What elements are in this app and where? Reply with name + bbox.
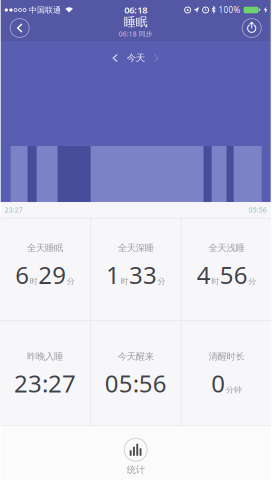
staticText: 0: [211, 367, 225, 399]
staticText: 29: [38, 259, 66, 290]
staticText: 清醒时长: [208, 351, 244, 362]
staticText: 时: [211, 276, 219, 286]
staticText: 今天醒来: [118, 351, 154, 362]
staticText: 6: [15, 259, 29, 290]
staticText: 时: [30, 276, 38, 286]
staticText: 1: [106, 259, 120, 290]
staticText: 分钟: [226, 385, 242, 395]
staticText: 昨晚入睡: [27, 351, 63, 362]
staticText: 睡眠: [124, 15, 148, 29]
staticText: 23:27: [14, 367, 76, 399]
button[interactable]: 统计: [106, 433, 166, 480]
staticText: 33: [129, 259, 157, 290]
staticText: 06:18: [124, 4, 147, 16]
staticText: 全天浅睡: [208, 242, 244, 254]
staticText: 4: [197, 259, 211, 290]
staticText: 56: [220, 259, 248, 290]
button[interactable]: Share: [238, 14, 266, 42]
staticText: 分: [67, 276, 75, 286]
staticText: 分: [248, 276, 256, 286]
staticText: 中国联通: [29, 5, 61, 15]
staticText: 分: [157, 276, 165, 286]
button[interactable]: 今天: [113, 41, 159, 71]
staticText: 全天睡眠: [27, 242, 63, 254]
staticText: 23:27: [5, 206, 23, 214]
staticText: 时: [120, 276, 128, 286]
staticText: 06:18 同步: [119, 29, 153, 38]
staticText: 今天: [127, 52, 145, 64]
staticText: 统计: [127, 464, 145, 476]
staticText: 05:56: [249, 206, 267, 214]
staticText: 100%: [219, 5, 241, 15]
staticText: 全天深睡: [118, 242, 154, 254]
staticText: 05:56: [105, 367, 167, 399]
button[interactable]: Back: [6, 14, 34, 42]
